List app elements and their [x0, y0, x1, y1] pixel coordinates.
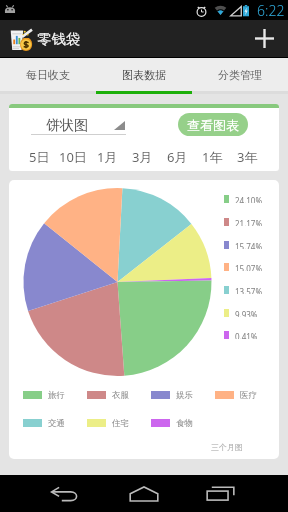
staticText: 6月	[167, 148, 188, 166]
staticText: 3年	[237, 148, 258, 166]
button[interactable]: 5日	[22, 146, 56, 167]
button[interactable]: Recent apps	[192, 475, 248, 512]
staticText: 6:22	[257, 1, 285, 20]
button[interactable]: 9.93%	[224, 309, 258, 317]
button[interactable]: 旅行	[23, 390, 87, 400]
staticText: 旅行	[48, 390, 65, 400]
button[interactable]: 图表数据	[96, 58, 192, 91]
button[interactable]: 15.07%	[224, 263, 263, 271]
button[interactable]: 住宅	[87, 418, 151, 428]
staticText: 娱乐	[176, 390, 193, 400]
staticText: 1年	[202, 148, 223, 166]
button[interactable]: 分类管理	[192, 58, 288, 91]
button[interactable]: 衣服	[87, 390, 151, 400]
button[interactable]: 3月	[125, 146, 160, 167]
staticText: 21.17%	[235, 218, 263, 226]
button[interactable]: Add	[240, 20, 288, 57]
button[interactable]: 24.10%	[224, 195, 263, 203]
button[interactable]: 3年	[230, 146, 265, 167]
button[interactable]: 13.57%	[224, 286, 263, 294]
button[interactable]: 1年	[195, 146, 230, 167]
button[interactable]: 6月	[160, 146, 195, 167]
staticText: 饼状图	[46, 117, 88, 135]
staticText: 13.57%	[235, 286, 263, 294]
button[interactable]: Back	[36, 475, 92, 512]
staticText: 24.10%	[235, 195, 263, 203]
button[interactable]: 查看图表	[178, 113, 248, 136]
staticText: 0.41%	[235, 331, 258, 339]
staticText: 食物	[176, 418, 193, 428]
button[interactable]: 交通	[23, 418, 87, 428]
button[interactable]: 医疗	[215, 390, 279, 400]
staticText: 医疗	[240, 390, 257, 400]
staticText: 5日	[29, 148, 50, 166]
staticText: 交通	[48, 418, 65, 428]
staticText: 9.93%	[235, 309, 258, 317]
staticText: 分类管理	[218, 68, 262, 82]
staticText: 3月	[132, 148, 153, 166]
staticText: 三个月图	[211, 442, 243, 452]
button[interactable]: 每日收支	[0, 58, 96, 91]
button[interactable]: 娱乐	[151, 390, 215, 400]
staticText: 每日收支	[26, 68, 70, 82]
staticText: 15.07%	[235, 263, 263, 271]
button[interactable]: 0.41%	[224, 331, 258, 339]
staticText: 10日	[59, 148, 87, 166]
button[interactable]: Home	[116, 475, 172, 512]
button[interactable]: 15.74%	[224, 241, 263, 249]
button[interactable]: 10日	[56, 146, 90, 167]
button[interactable]: 饼状图	[31, 112, 126, 135]
staticText: 衣服	[112, 390, 129, 400]
staticText: 住宅	[112, 418, 129, 428]
button[interactable]: 21.17%	[224, 218, 263, 226]
staticText: 查看图表	[187, 117, 239, 133]
staticText: 15.74%	[235, 241, 263, 249]
staticText: 零钱袋	[37, 30, 81, 48]
staticText: 图表数据	[122, 68, 166, 82]
button[interactable]: 食物	[151, 418, 215, 428]
staticText: 1月	[97, 148, 118, 166]
button[interactable]: 1月	[90, 146, 125, 167]
